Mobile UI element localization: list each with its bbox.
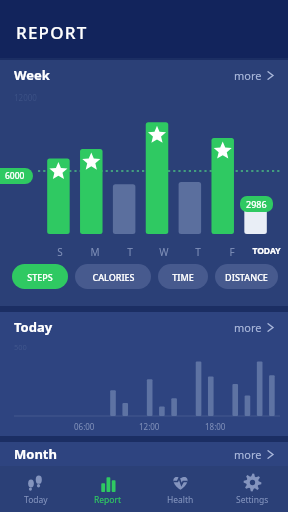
staticText: TODAY — [252, 245, 281, 257]
staticText: 500 — [14, 342, 27, 352]
staticText: 6000 — [5, 170, 25, 182]
staticText: W — [159, 245, 169, 259]
button[interactable]: DISTANCE — [215, 264, 278, 289]
button[interactable]: Report — [72, 466, 144, 512]
staticText: M — [90, 245, 100, 259]
staticText: Month — [14, 445, 57, 463]
staticText: DISTANCE — [225, 271, 268, 283]
staticText: more — [234, 320, 262, 335]
button[interactable]: Health — [144, 466, 216, 512]
staticText: STEPS — [27, 271, 53, 283]
staticText: TIME — [172, 271, 194, 283]
staticText: F — [229, 245, 235, 259]
staticText: REPORT — [16, 21, 88, 44]
button[interactable]: Settings — [216, 466, 288, 512]
staticText: S — [57, 245, 63, 259]
button[interactable]: Today — [0, 466, 72, 512]
staticText: Settings — [236, 494, 269, 506]
button[interactable]: more — [232, 64, 276, 87]
staticText: Health — [167, 494, 194, 506]
staticText: Today — [24, 494, 48, 506]
staticText: CALORIES — [92, 271, 135, 283]
button[interactable]: TIME — [158, 264, 208, 289]
staticText: 18:00 — [205, 421, 226, 432]
staticText: 12:00 — [139, 421, 160, 432]
staticText: 12000 — [14, 92, 37, 103]
button[interactable]: STEPS — [12, 264, 68, 289]
staticText: T — [127, 245, 133, 259]
button[interactable]: CALORIES — [75, 264, 151, 289]
staticText: more — [234, 68, 262, 83]
staticText: Week — [14, 66, 50, 84]
staticText: T — [195, 245, 201, 259]
staticText: more — [234, 447, 262, 462]
button[interactable]: more — [232, 443, 276, 466]
staticText: 06:00 — [74, 421, 95, 432]
staticText: Report — [94, 494, 122, 506]
button[interactable]: more — [232, 316, 276, 339]
staticText: Today — [14, 318, 53, 336]
staticText: 2986 — [246, 198, 267, 210]
